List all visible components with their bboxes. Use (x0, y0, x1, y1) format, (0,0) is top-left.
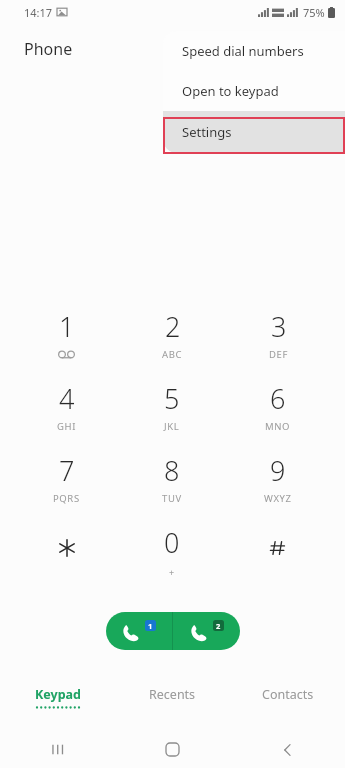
button[interactable]: 6 (225, 372, 331, 444)
staticText: Open to keypad (182, 82, 279, 100)
button[interactable] (14, 516, 119, 588)
button[interactable]: Settings (163, 111, 345, 153)
button[interactable]: 1 (14, 300, 119, 372)
staticText: Keypad (35, 686, 81, 703)
staticText: 2 (165, 308, 181, 345)
button[interactable]: 8 (119, 444, 225, 516)
staticText: 2 (216, 621, 221, 631)
button[interactable]: 5 (119, 372, 225, 444)
staticText: MNO (265, 420, 291, 433)
button[interactable]: Speed dial numbers (163, 31, 345, 70)
staticText: TUV (162, 492, 182, 505)
staticText: 8 (164, 452, 180, 489)
staticText: 75% (303, 5, 325, 20)
staticText: DEF (269, 348, 288, 361)
staticText: ABC (162, 348, 183, 361)
button[interactable] (225, 516, 331, 588)
button[interactable]: Contacts (230, 686, 345, 724)
button[interactable]: Recent apps (0, 731, 115, 768)
staticText: PQRS (53, 492, 80, 505)
staticText: Speed dial numbers (182, 42, 304, 60)
staticText: Recents (149, 686, 196, 703)
staticText: 14:17 (24, 5, 53, 20)
staticText: GHI (57, 420, 76, 433)
button[interactable]: Recents (115, 686, 230, 724)
button[interactable]: 9 (225, 444, 331, 516)
staticText: 4 (59, 380, 75, 417)
staticText: 3 (271, 308, 287, 345)
button[interactable]: Call with SIM 2 (173, 612, 240, 650)
staticText: WXYZ (264, 492, 292, 505)
staticText: 1 (148, 621, 153, 631)
button[interactable]: 2 (119, 300, 225, 372)
button[interactable]: Home (115, 731, 230, 768)
button[interactable]: Open to keypad (163, 70, 345, 111)
staticText: JKL (164, 420, 180, 433)
button[interactable]: Back (230, 731, 345, 768)
staticText: + (169, 566, 175, 578)
staticText: 7 (59, 452, 75, 489)
button[interactable]: 7 (14, 444, 119, 516)
button[interactable]: 4 (14, 372, 119, 444)
button[interactable]: Keypad (0, 686, 115, 724)
button[interactable]: Call with SIM 1 (106, 612, 172, 650)
button[interactable]: 3 (225, 300, 331, 372)
staticText: Contacts (262, 686, 314, 703)
staticText: 0 (164, 524, 180, 561)
button[interactable]: 0 (119, 516, 225, 588)
staticText: 9 (270, 452, 286, 489)
staticText: 5 (164, 380, 180, 417)
staticText: 6 (270, 380, 286, 417)
staticText: Settings (182, 123, 232, 141)
staticText: Phone (24, 38, 73, 60)
staticText: 1 (59, 308, 75, 345)
